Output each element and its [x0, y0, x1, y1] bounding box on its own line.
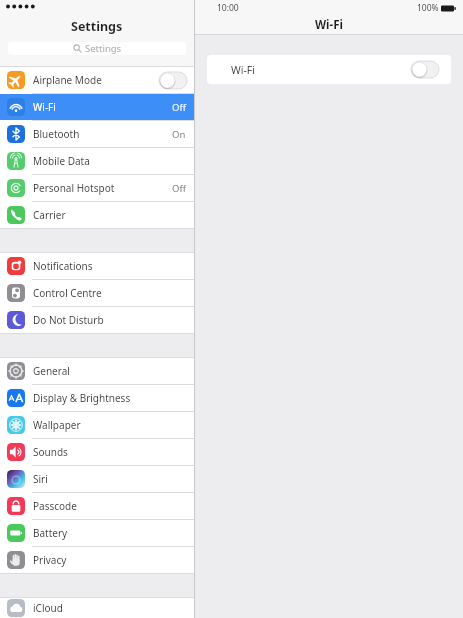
staticText: 10:00	[217, 2, 239, 14]
staticText: Mobile Data	[33, 154, 90, 168]
staticText: Wi-Fi	[231, 63, 256, 77]
button[interactable]: Control Centre	[0, 280, 194, 306]
staticText: Battery	[33, 526, 68, 540]
button[interactable]: Display & Brightness	[0, 385, 194, 411]
staticText: Privacy	[33, 553, 67, 567]
button[interactable]: Do Not Disturb	[0, 307, 194, 333]
button[interactable]: iCloud	[0, 598, 194, 618]
button[interactable]: Airplane Mode	[0, 67, 194, 93]
staticText: Settings	[71, 18, 123, 35]
button[interactable]: Privacy	[0, 547, 194, 573]
button[interactable]: Mobile Data	[0, 148, 194, 174]
button[interactable]: Passcode	[0, 493, 194, 519]
staticText: Display & Brightness	[33, 391, 131, 405]
staticText: Passcode	[33, 499, 77, 513]
button[interactable]: Airplane Mode toggle	[159, 72, 187, 89]
button[interactable]: Wi-Fi toggle	[411, 61, 439, 78]
staticText: Wi-Fi	[33, 100, 56, 114]
button[interactable]: Wallpaper	[0, 412, 194, 438]
button[interactable]: Wi-Fi	[0, 94, 194, 120]
staticText: Carrier	[33, 208, 66, 222]
button[interactable]: Personal Hotspot	[0, 175, 194, 201]
button[interactable]: Bluetooth	[0, 121, 194, 147]
staticText: Control Centre	[33, 286, 102, 300]
staticText: Airplane Mode	[33, 73, 102, 87]
staticText: Personal Hotspot	[33, 181, 115, 195]
button[interactable]: Battery	[0, 520, 194, 546]
staticText: Settings	[85, 42, 122, 55]
button[interactable]: Settings	[8, 42, 186, 55]
button[interactable]: Notifications	[0, 253, 194, 279]
staticText: Off	[172, 182, 186, 195]
staticText: 100%	[417, 2, 439, 14]
staticText: Wi-Fi	[315, 17, 343, 33]
staticText: Wallpaper	[33, 418, 81, 432]
button[interactable]: General	[0, 358, 194, 384]
staticText: On	[172, 128, 186, 141]
button[interactable]: Siri	[0, 466, 194, 492]
button[interactable]: Carrier	[0, 202, 194, 228]
staticText: iCloud	[33, 601, 63, 615]
staticText: Siri	[33, 472, 48, 486]
button[interactable]: Sounds	[0, 439, 194, 465]
staticText: Off	[172, 101, 186, 114]
staticText: General	[33, 364, 70, 378]
staticText: Bluetooth	[33, 127, 80, 141]
staticText: Do Not Disturb	[33, 313, 104, 327]
staticText: Sounds	[33, 445, 68, 459]
button[interactable]: Wi-Fi	[207, 55, 451, 84]
staticText: Notifications	[33, 259, 93, 273]
